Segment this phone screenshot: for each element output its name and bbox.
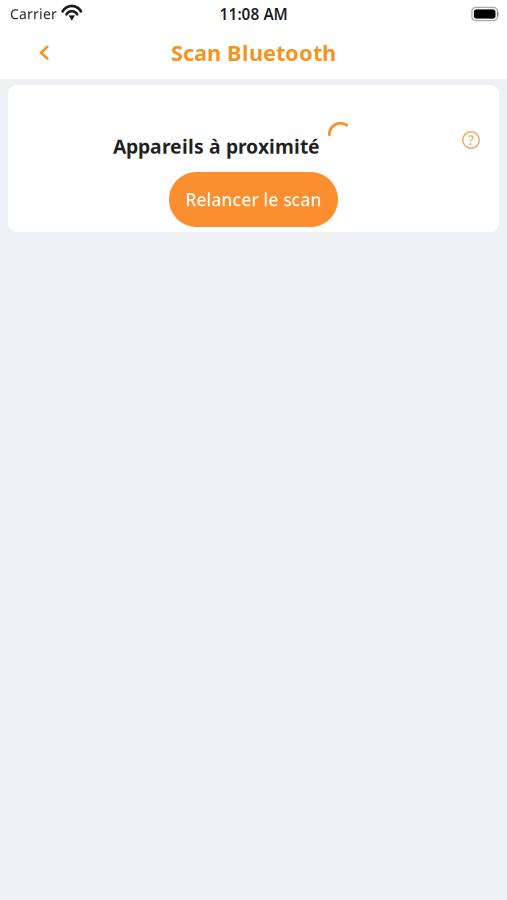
staticText: Relancer le scan [185, 188, 321, 211]
button[interactable]: Back [0, 34, 67, 73]
staticText: 11:08 AM [219, 4, 287, 24]
staticText: ? [468, 131, 474, 149]
staticText: Scan Bluetooth [171, 38, 336, 67]
staticText: Carrier [10, 5, 57, 23]
staticText: Appareils à proximité [113, 133, 320, 159]
button[interactable]: Help [461, 130, 481, 150]
button[interactable]: Relancer le scan [169, 172, 338, 227]
